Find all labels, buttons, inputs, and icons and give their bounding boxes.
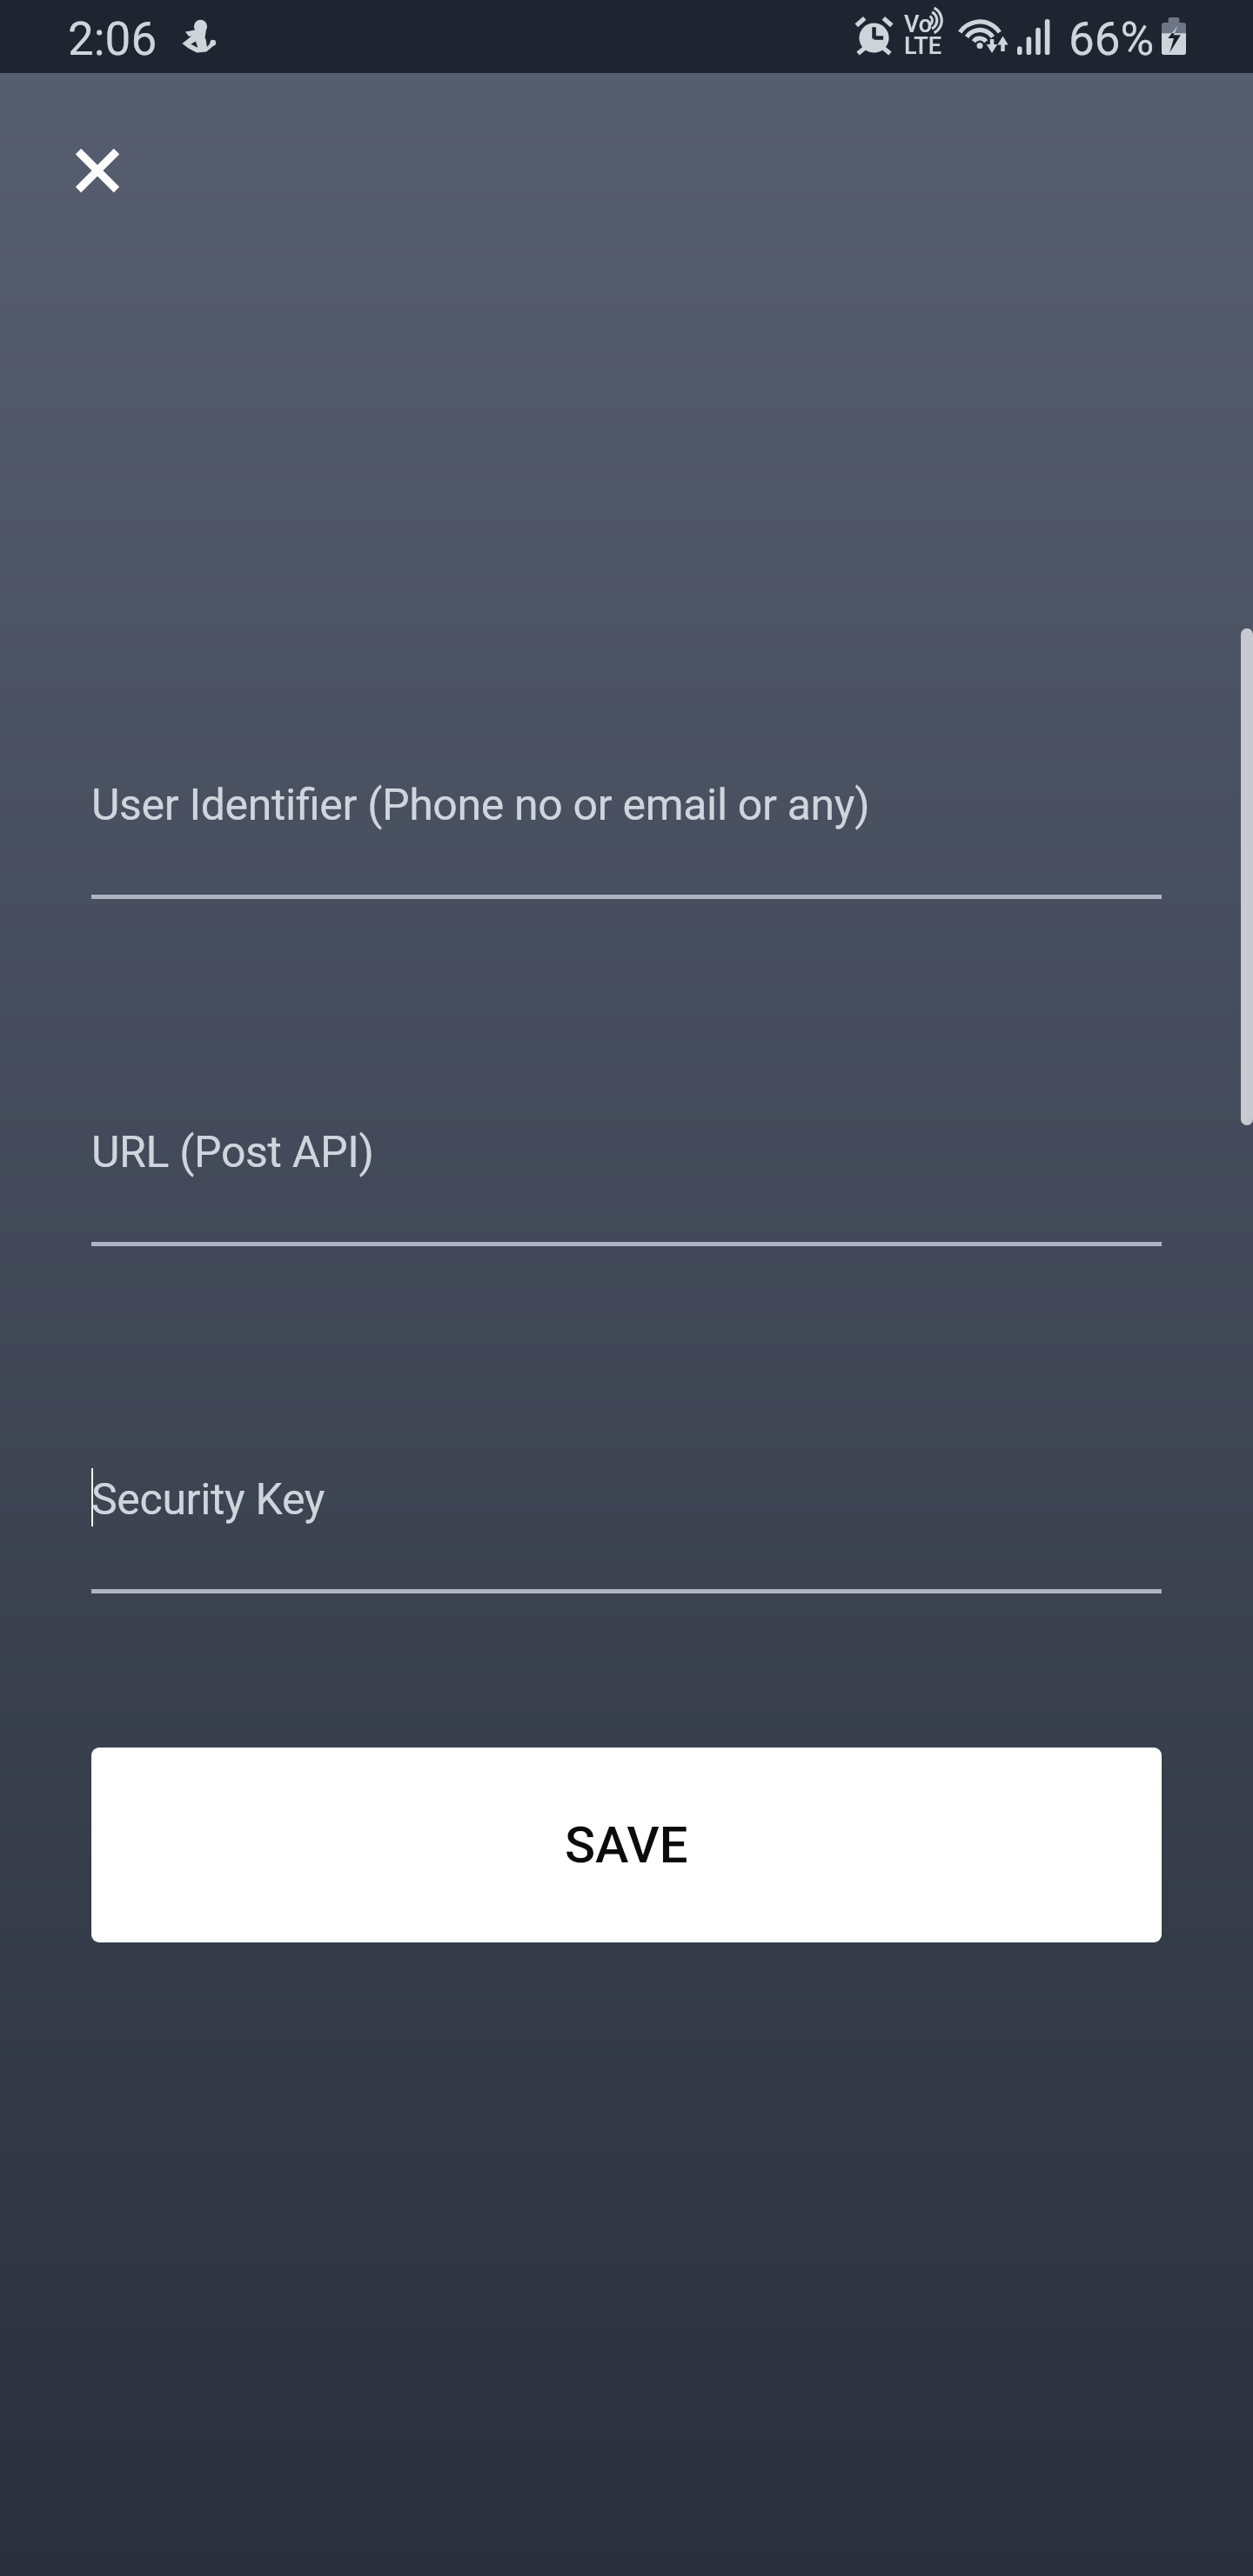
staticText: SAVE (565, 1815, 688, 1875)
staticText: Security Key (91, 1474, 325, 1526)
button[interactable]: SAVE (91, 1748, 1162, 1942)
button[interactable]: URL (Post API) (91, 1085, 1162, 1246)
button[interactable]: Security Key (91, 1432, 1162, 1593)
staticText: User Identifier (Phone no or email or an… (91, 780, 870, 831)
staticText: URL (Post API) (91, 1127, 374, 1178)
staticText: LTE (904, 32, 942, 60)
button[interactable]: Close (43, 116, 152, 225)
button[interactable]: User Identifier (Phone no or email or an… (91, 738, 1162, 899)
staticText: 66% (1069, 12, 1155, 66)
staticText: Vo (904, 10, 933, 38)
staticText: 2:06 (68, 12, 157, 66)
